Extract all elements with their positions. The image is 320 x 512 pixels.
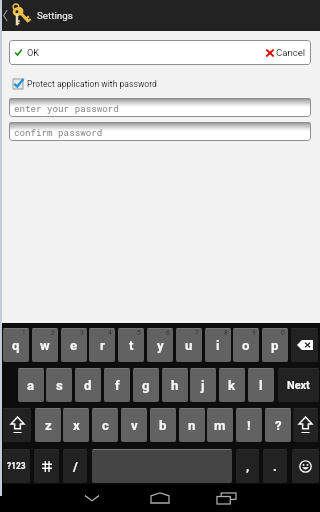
staticText: 0 [281,329,285,337]
staticText: b [159,418,167,433]
staticText: OK [27,47,40,58]
staticText: j [201,378,205,393]
staticText: p [271,338,279,353]
button[interactable]: e [61,328,87,362]
staticText: 9 [252,329,256,337]
staticText: Next [287,379,310,392]
staticText: 3 [80,329,84,337]
button[interactable]: i [205,328,231,362]
button[interactable]: Shift [3,408,31,442]
staticText: ? [275,418,282,433]
staticText: u [185,338,193,353]
staticText: t [129,338,134,353]
staticText: q [12,338,20,353]
staticText: 8 [224,329,228,337]
staticText: k [228,378,236,393]
button[interactable]: k [219,368,245,402]
staticText: s [56,378,63,393]
staticText: l [259,378,263,393]
staticText: g [142,378,150,393]
button[interactable]: . [263,449,287,483]
button[interactable]: t [118,328,144,362]
staticText: r [100,338,105,353]
button[interactable]: s [46,368,72,402]
button[interactable]: g [133,368,159,402]
button[interactable]: Home [140,484,180,512]
button[interactable]: Shift [293,408,318,442]
staticText: i [216,338,220,353]
staticText: f [115,378,120,393]
button[interactable]: y [147,328,173,362]
staticText: 4 [108,329,112,337]
staticText: w [40,338,50,353]
staticText: confirm password [14,126,103,138]
button[interactable]: Emoji [292,449,319,483]
button[interactable]: o [233,328,259,362]
staticText: enter your password [14,102,119,114]
staticText: y [157,338,164,353]
staticText: ! [247,418,251,433]
button[interactable]: b [150,408,176,442]
staticText: 5 [137,329,141,337]
button[interactable]: confirm password [9,122,311,141]
button[interactable]: c [92,408,118,442]
staticText: 7 [195,329,199,337]
button[interactable]: h [162,368,188,402]
button[interactable]: Recent apps [206,484,246,512]
button[interactable]: u [176,328,202,362]
staticText: ?123 [7,461,26,471]
button[interactable]: w [32,328,58,362]
button[interactable]: j [190,368,216,402]
staticText: o [242,338,250,353]
button[interactable]: Next [278,368,319,402]
staticText: v [131,418,138,433]
button[interactable]: Space [92,449,232,483]
button[interactable]: Hide keyboard [72,484,112,512]
button[interactable]: Change keyboard [34,449,59,483]
button[interactable]: , [236,449,259,483]
button[interactable]: f [104,368,130,402]
staticText: c [102,418,109,433]
button[interactable]: x [63,408,89,442]
button[interactable]: r [89,328,115,362]
button[interactable]: enter your password [9,98,311,117]
button[interactable]: Cancel [266,40,311,65]
staticText: . [273,459,277,474]
button[interactable]: m [207,408,233,442]
button[interactable]: Protect application with password [13,78,157,89]
button[interactable]: d [75,368,101,402]
staticText: m [214,418,226,433]
staticText: z [45,418,52,433]
staticText: e [70,338,78,353]
button[interactable]: v [121,408,147,442]
button[interactable]: ! [236,408,262,442]
button[interactable]: p [262,328,288,362]
staticText: 6 [166,329,170,337]
button[interactable]: ? [265,408,291,442]
button[interactable]: n [179,408,205,442]
staticText: Protect application with password [27,79,157,89]
button[interactable]: OK [9,40,266,65]
staticText: 2 [51,329,55,337]
button[interactable]: ?123 [3,449,30,483]
staticText: Cancel [276,47,306,58]
button[interactable]: l [248,368,274,402]
button[interactable]: z [35,408,61,442]
button[interactable]: / [63,449,87,483]
button[interactable]: Navigate up [0,0,320,31]
staticText: x [73,418,80,433]
staticText: h [171,378,179,393]
staticText: a [27,378,35,393]
staticText: n [188,418,196,433]
button[interactable]: q [3,328,29,362]
staticText: 1 [22,329,26,337]
button[interactable]: a [18,368,44,402]
staticText: Settings [37,10,73,21]
staticText: / [73,459,78,474]
button[interactable]: Backspace [291,328,318,362]
staticText: , [246,459,250,474]
staticText: d [84,378,92,393]
